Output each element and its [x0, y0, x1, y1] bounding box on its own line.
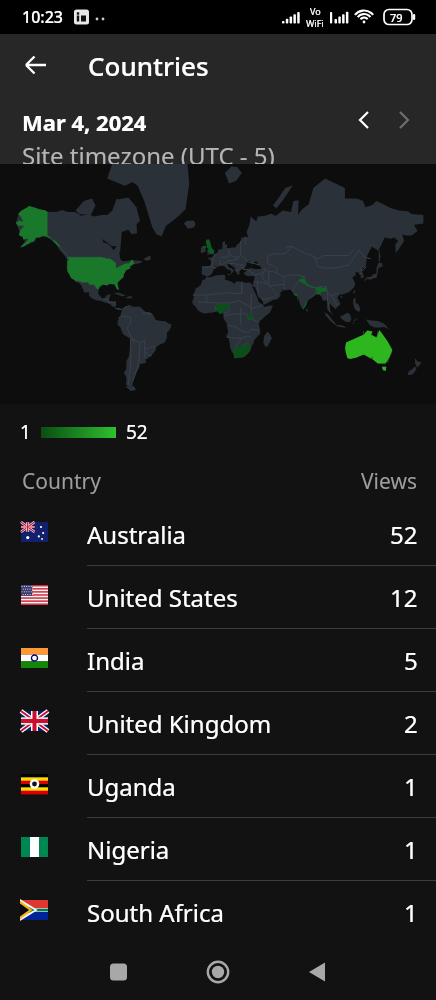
staticText: 1 — [404, 896, 418, 929]
staticText: 1 — [20, 419, 31, 445]
staticText: United States — [87, 581, 238, 614]
staticText: Mar 4, 2024 — [22, 107, 147, 137]
button[interactable]: United Kingdom — [0, 692, 436, 755]
staticText: Australia — [87, 518, 187, 551]
staticText: 5 — [404, 644, 418, 677]
button[interactable]: Nigeria — [0, 818, 436, 881]
button[interactable]: Uganda — [0, 755, 436, 818]
staticText: India — [87, 644, 145, 677]
staticText: Site timezone (UTC - 5) — [22, 139, 275, 164]
staticText: 1 — [404, 770, 418, 803]
staticText: 1 — [404, 833, 418, 866]
staticText: Vo — [310, 5, 321, 17]
staticText: Nigeria — [87, 833, 170, 866]
button[interactable]: Previous day — [344, 100, 384, 140]
staticText: 52 — [126, 419, 148, 445]
staticText: 52 — [390, 518, 418, 551]
button[interactable]: Back — [14, 43, 58, 87]
staticText: Countries — [88, 48, 209, 83]
button[interactable]: India — [0, 629, 436, 692]
button[interactable]: Australia — [0, 503, 436, 566]
staticText: WiFi — [306, 17, 324, 29]
staticText: United Kingdom — [87, 707, 272, 740]
staticText: Country — [22, 467, 101, 496]
button[interactable]: South Africa — [0, 881, 436, 944]
staticText: 79 — [390, 10, 403, 25]
button[interactable]: United States — [0, 566, 436, 629]
staticText: 12 — [390, 581, 418, 614]
staticText: 2 — [404, 707, 418, 740]
staticText: Views — [361, 467, 418, 496]
button[interactable]: Next day — [384, 100, 424, 140]
staticText: Uganda — [87, 770, 176, 803]
staticText: 10:23 — [22, 6, 63, 28]
staticText: South Africa — [87, 896, 224, 929]
